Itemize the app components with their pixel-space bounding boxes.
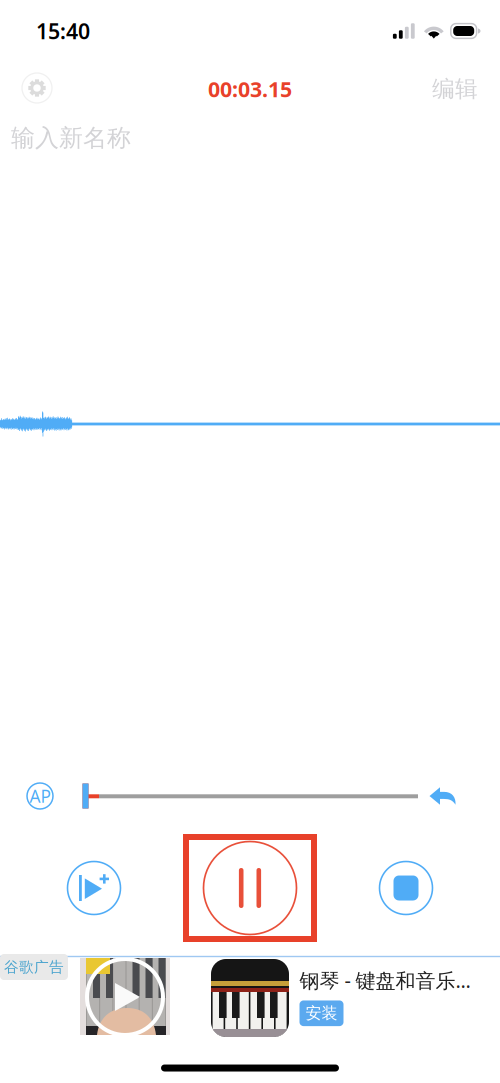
staticText: 编辑 xyxy=(432,75,478,103)
staticText: 00:03.15 xyxy=(208,75,292,103)
button[interactable]: 安装 xyxy=(299,1000,343,1026)
button[interactable]: Undo xyxy=(422,780,463,812)
button[interactable]: 输入新名称 xyxy=(0,114,500,162)
staticText: 15:40 xyxy=(36,17,90,45)
button[interactable]: Settings xyxy=(17,68,57,108)
staticText: 安装 xyxy=(305,1003,337,1023)
button[interactable]: 编辑 xyxy=(424,69,486,109)
button[interactable]: Pause xyxy=(183,834,317,942)
staticText: 谷歌广告 xyxy=(4,958,64,976)
staticText: 输入新名称 xyxy=(11,123,131,153)
button[interactable]: Stop xyxy=(379,861,432,914)
button[interactable]: Play from start xyxy=(67,861,120,914)
staticText: 钢琴 - 键盘和音乐... xyxy=(299,967,470,993)
button[interactable]: Audio preset xyxy=(22,778,58,814)
staticText: AP xyxy=(29,784,50,807)
